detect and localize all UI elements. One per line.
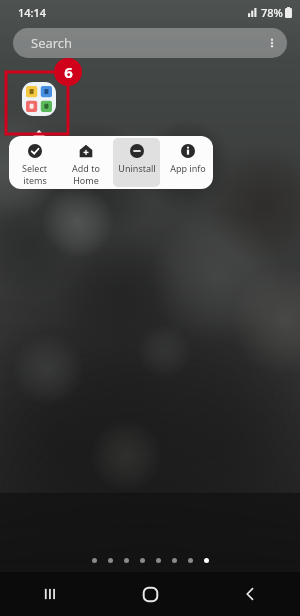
staticText: 14:14	[18, 5, 47, 20]
button[interactable]: Recent apps	[0, 572, 100, 616]
button[interactable]	[156, 558, 161, 563]
staticText: 78%	[261, 5, 283, 20]
button[interactable]: Select	[11, 138, 58, 187]
staticText: App info	[170, 162, 206, 174]
staticText: items	[23, 174, 47, 186]
staticText: Uninstall	[118, 162, 156, 174]
button[interactable]: Home	[100, 572, 200, 616]
button[interactable]: Search	[13, 28, 287, 58]
button[interactable]: Uninstall	[113, 138, 160, 187]
button[interactable]	[204, 558, 209, 563]
staticText: Add to	[72, 162, 100, 174]
button[interactable]	[108, 558, 113, 563]
button[interactable]	[22, 82, 56, 116]
button[interactable]	[172, 558, 177, 563]
button[interactable]: Back	[200, 572, 300, 616]
button[interactable]	[124, 558, 129, 563]
button[interactable]	[188, 558, 193, 563]
staticText: Search	[31, 34, 73, 52]
button[interactable]: Add to	[62, 138, 109, 187]
button[interactable]	[92, 558, 97, 563]
button[interactable]: More options	[257, 28, 287, 58]
staticText: Home	[73, 174, 99, 186]
button[interactable]: App info	[164, 138, 211, 187]
staticText: Select	[22, 162, 47, 174]
button[interactable]	[140, 558, 145, 563]
staticText: 6	[64, 62, 73, 82]
